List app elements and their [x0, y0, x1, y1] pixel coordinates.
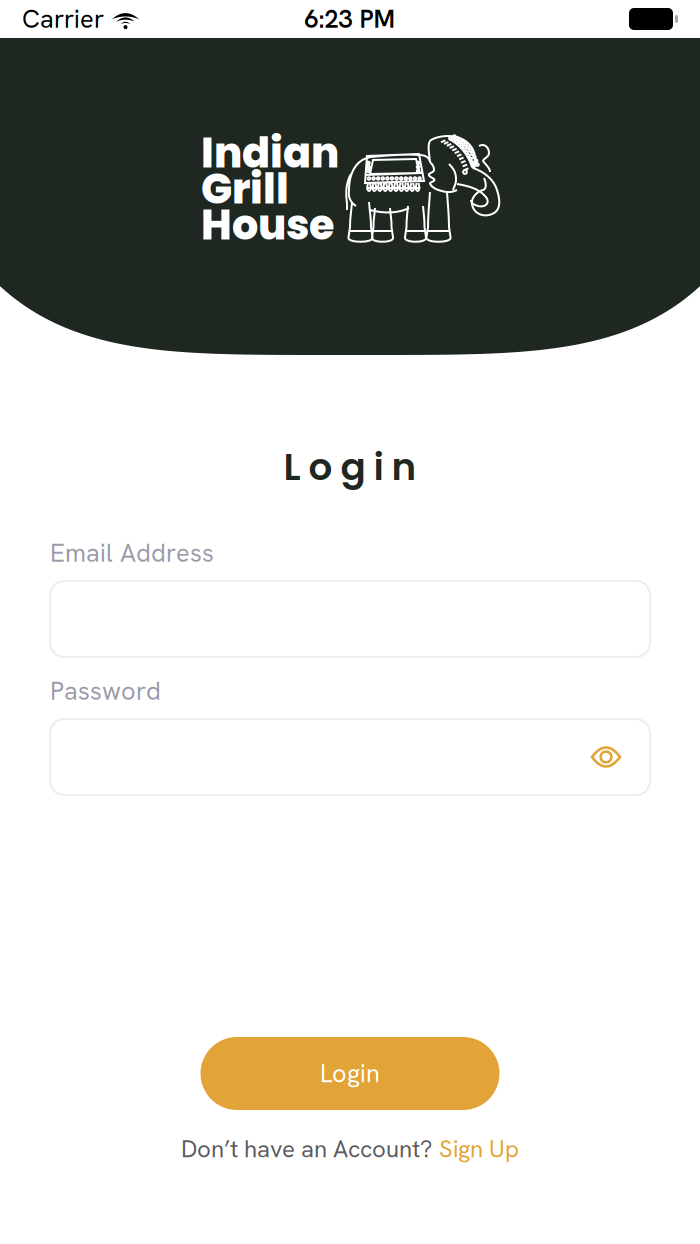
staticText: Sign Up	[439, 1133, 519, 1165]
button[interactable]: Login	[200, 1037, 499, 1110]
staticText: Grill	[201, 160, 289, 218]
staticText: 6:23 PM	[304, 2, 395, 35]
staticText: Password	[50, 674, 161, 707]
button[interactable]: Show password	[586, 741, 626, 772]
staticText: Email Address	[50, 536, 214, 569]
staticText: Don’t have an Account?	[181, 1133, 432, 1165]
staticText: Carrier	[22, 2, 104, 35]
staticText: House	[201, 196, 334, 254]
staticText: Login	[320, 1057, 380, 1090]
staticText: Login	[283, 441, 416, 493]
button[interactable]: Don’t have an Account?	[181, 1131, 519, 1167]
staticText: Indian	[201, 124, 339, 182]
